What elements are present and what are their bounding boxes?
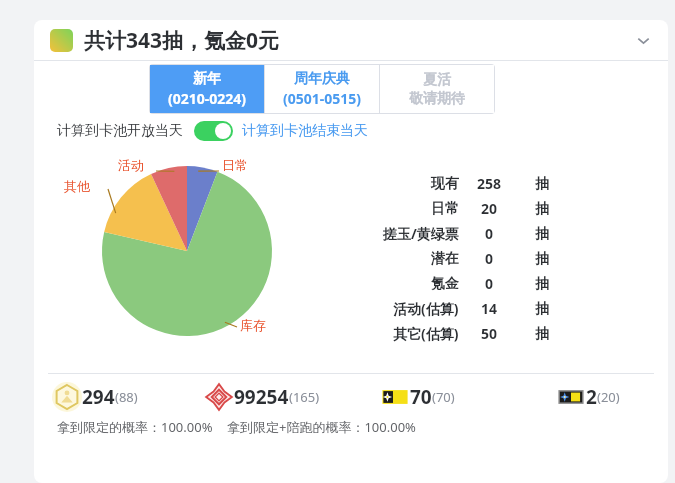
button[interactable]: Resource <box>52 380 204 414</box>
staticText: 0 <box>485 274 494 293</box>
other: Resource <box>204 382 234 412</box>
other: Resource <box>52 382 82 412</box>
staticText: 50 <box>481 324 498 343</box>
staticText: (20) <box>597 388 620 406</box>
staticText: 抽 <box>535 275 549 293</box>
staticText: (0210-0224) <box>168 89 247 108</box>
staticText: 夏活 <box>423 71 451 89</box>
staticText: 抽 <box>535 175 549 193</box>
staticText: (70) <box>432 388 455 406</box>
staticText: 抽 <box>535 225 549 243</box>
staticText: (165) <box>289 388 320 406</box>
other: Resource <box>556 382 586 412</box>
button[interactable]: Resource <box>380 380 556 414</box>
staticText: 新年 <box>193 70 221 88</box>
staticText: 其它(估算) <box>393 324 459 343</box>
staticText: 潜在 <box>431 250 459 268</box>
button[interactable]: Resource <box>556 380 646 414</box>
staticText: 计算到卡池开放当天 <box>57 122 183 140</box>
staticText: 0 <box>485 224 494 243</box>
staticText: 搓玉/黄绿票 <box>383 224 459 243</box>
staticText: 拿到限定的概率：100.00% <box>57 418 213 436</box>
staticText: 抽 <box>535 300 549 318</box>
staticText: 现有 <box>431 175 459 193</box>
staticText: 抽 <box>535 325 549 343</box>
button[interactable]: 夏活 <box>380 65 494 113</box>
staticText: 70 <box>410 384 432 410</box>
button[interactable]: 周年庆典 <box>265 65 379 113</box>
button[interactable]: Toggle pool date <box>194 121 233 141</box>
button[interactable]: 共计343抽，氪金0元 <box>34 20 668 60</box>
staticText: 日常 <box>222 157 248 173</box>
staticText: 抽 <box>535 250 549 268</box>
staticText: 拿到限定+陪跑的概率：100.00% <box>227 418 416 436</box>
staticText: 14 <box>481 299 498 318</box>
staticText: 库存 <box>240 317 266 333</box>
staticText: 敬请期待 <box>409 90 465 108</box>
staticText: 周年庆典 <box>294 70 350 88</box>
staticText: (88) <box>115 388 138 406</box>
staticText: 258 <box>477 174 502 193</box>
other: Resource <box>380 382 410 412</box>
button[interactable]: 新年 <box>150 65 264 113</box>
staticText: 99254 <box>234 384 289 410</box>
staticText: 20 <box>481 199 498 218</box>
staticText: 其他 <box>64 178 90 194</box>
button[interactable]: Resource <box>204 380 380 414</box>
staticText: 294 <box>82 384 115 410</box>
button[interactable]: Collapse <box>632 29 654 51</box>
staticText: 0 <box>485 249 494 268</box>
staticText: (0501-0515) <box>283 89 362 108</box>
staticText: 活动 <box>118 157 144 173</box>
staticText: 共计343抽，氪金0元 <box>84 26 280 55</box>
staticText: 氪金 <box>431 275 459 293</box>
staticText: 日常 <box>431 200 459 218</box>
staticText: 活动(估算) <box>393 299 459 318</box>
staticText: 抽 <box>535 200 549 218</box>
staticText: 计算到卡池结束当天 <box>242 122 368 140</box>
staticText: 2 <box>586 384 597 410</box>
